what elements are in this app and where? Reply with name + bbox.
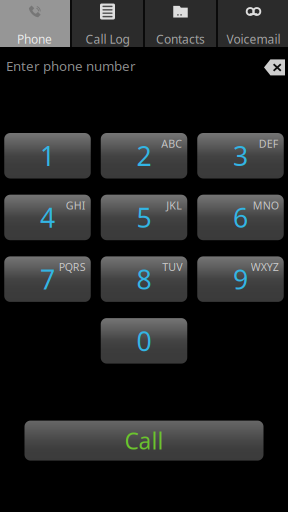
staticText: Call Log (85, 31, 129, 47)
staticText: 2 (136, 138, 151, 173)
button[interactable]: 1 (4, 133, 91, 178)
button[interactable]: Call (24, 421, 263, 461)
staticText: PQRS (59, 260, 86, 274)
staticText: MNO (253, 198, 279, 212)
staticText: 0 (136, 323, 151, 358)
staticText: 6 (233, 200, 248, 235)
staticText: GHI (66, 198, 86, 212)
button[interactable]: Contacts (145, 0, 216, 47)
staticText: 9 (233, 261, 248, 297)
button[interactable]: 7 (4, 256, 91, 302)
staticText: 3 (233, 138, 248, 173)
button[interactable]: Call Log (72, 0, 143, 47)
staticText: WXYZ (251, 260, 279, 274)
button[interactable]: 4 (4, 195, 91, 240)
button[interactable]: 2 (101, 133, 187, 178)
button[interactable]: Phone (0, 0, 70, 47)
staticText: JKL (166, 198, 182, 212)
button[interactable]: 8 (101, 256, 187, 302)
staticText: 7 (40, 261, 55, 297)
staticText: Phone (17, 31, 52, 47)
staticText: Enter phone number (6, 57, 136, 75)
button[interactable]: 9 (197, 256, 284, 302)
staticText: 5 (136, 200, 151, 235)
staticText: 4 (40, 200, 55, 235)
staticText: DEF (259, 136, 279, 151)
staticText: Call (124, 425, 163, 456)
staticText: TUV (162, 260, 182, 274)
staticText: Voicemail (226, 31, 280, 47)
button[interactable]: 3 (197, 133, 284, 178)
staticText: 1 (40, 138, 55, 173)
staticText: ABC (161, 136, 182, 151)
staticText: 8 (136, 261, 151, 297)
button[interactable]: Voicemail (218, 0, 288, 47)
button[interactable]: 0 (101, 318, 187, 364)
button[interactable]: Delete (264, 59, 285, 75)
staticText: Contacts (156, 31, 205, 47)
button[interactable]: 5 (101, 195, 187, 240)
button[interactable]: 6 (197, 195, 284, 240)
